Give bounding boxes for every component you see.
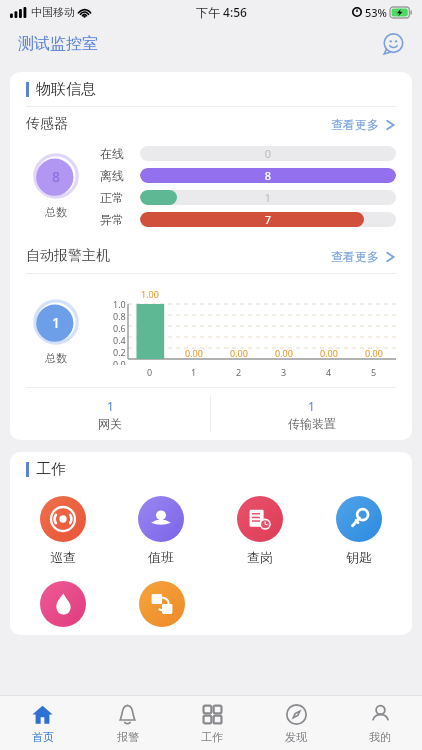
- staticText: 总数: [45, 205, 67, 219]
- button[interactable]: 工作: [170, 696, 254, 750]
- staticText: 0.00: [185, 347, 203, 359]
- staticText: 在线: [100, 146, 132, 161]
- staticText: 传输装置: [288, 416, 336, 431]
- staticText: 中国移动: [31, 5, 75, 19]
- staticText: 0.00: [320, 347, 338, 359]
- staticText: 测试监控室: [18, 34, 98, 54]
- staticText: 1: [308, 398, 315, 414]
- staticText: 1.0: [113, 298, 126, 310]
- staticText: 钥匙: [346, 549, 372, 565]
- button[interactable]: 查岗: [210, 492, 309, 569]
- staticText: 巡查: [50, 549, 76, 565]
- staticText: 报警: [117, 730, 139, 744]
- staticText: 2: [236, 366, 242, 378]
- staticText: 53%: [365, 5, 387, 20]
- staticText: 0.00: [230, 347, 248, 359]
- staticText: 1.00: [141, 288, 159, 300]
- button[interactable]: 1: [211, 388, 412, 440]
- staticText: 8: [52, 167, 61, 186]
- button[interactable]: 发现: [254, 696, 338, 750]
- staticText: 网关: [98, 416, 122, 431]
- staticText: 7: [140, 212, 396, 227]
- staticText: 查看更多: [331, 249, 379, 264]
- staticText: 0.6: [113, 322, 126, 334]
- staticText: 1: [191, 366, 197, 378]
- button[interactable]: 查看更多: [329, 245, 398, 268]
- staticText: 0: [140, 146, 396, 161]
- staticText: 0.0: [113, 358, 126, 365]
- button[interactable]: [14, 577, 112, 631]
- staticText: 查岗: [247, 549, 273, 565]
- button[interactable]: 巡查: [14, 492, 112, 569]
- staticText: 工作: [36, 460, 66, 479]
- staticText: 总数: [45, 351, 67, 365]
- staticText: 我的: [369, 730, 391, 744]
- staticText: 离线: [100, 168, 132, 183]
- staticText: 传感器: [26, 115, 68, 133]
- staticText: 8: [140, 168, 396, 183]
- button[interactable]: [112, 577, 211, 631]
- staticText: 工作: [201, 730, 223, 744]
- staticText: 5: [371, 366, 377, 378]
- staticText: 1: [107, 398, 114, 414]
- button[interactable]: 1: [10, 388, 210, 440]
- button[interactable]: Feedback: [378, 29, 408, 59]
- staticText: 查看更多: [331, 117, 379, 132]
- button[interactable]: 我的: [338, 696, 422, 750]
- staticText: 0.8: [113, 310, 126, 322]
- staticText: 3: [281, 366, 287, 378]
- staticText: 正常: [100, 190, 132, 205]
- staticText: 0.00: [275, 347, 293, 359]
- staticText: 发现: [285, 730, 307, 744]
- button[interactable]: 8: [26, 143, 86, 229]
- staticText: 0: [147, 366, 153, 378]
- staticText: 0.00: [365, 347, 383, 359]
- staticText: 首页: [32, 730, 54, 744]
- button[interactable]: 查看更多: [329, 113, 398, 136]
- button[interactable]: 1: [26, 289, 86, 375]
- staticText: 1: [140, 190, 396, 205]
- staticText: 0.2: [113, 346, 126, 358]
- staticText: 0.4: [113, 334, 126, 346]
- button[interactable]: 报警: [85, 696, 170, 750]
- staticText: 4: [326, 366, 332, 378]
- staticText: 值班: [148, 549, 174, 565]
- button[interactable]: 首页: [0, 696, 85, 750]
- button[interactable]: 值班: [112, 492, 210, 569]
- button[interactable]: 钥匙: [309, 492, 408, 569]
- staticText: 异常: [100, 212, 132, 227]
- staticText: 下午 4:56: [196, 4, 247, 20]
- staticText: 物联信息: [36, 80, 96, 99]
- staticText: 1: [52, 313, 61, 332]
- staticText: 自动报警主机: [26, 247, 110, 265]
